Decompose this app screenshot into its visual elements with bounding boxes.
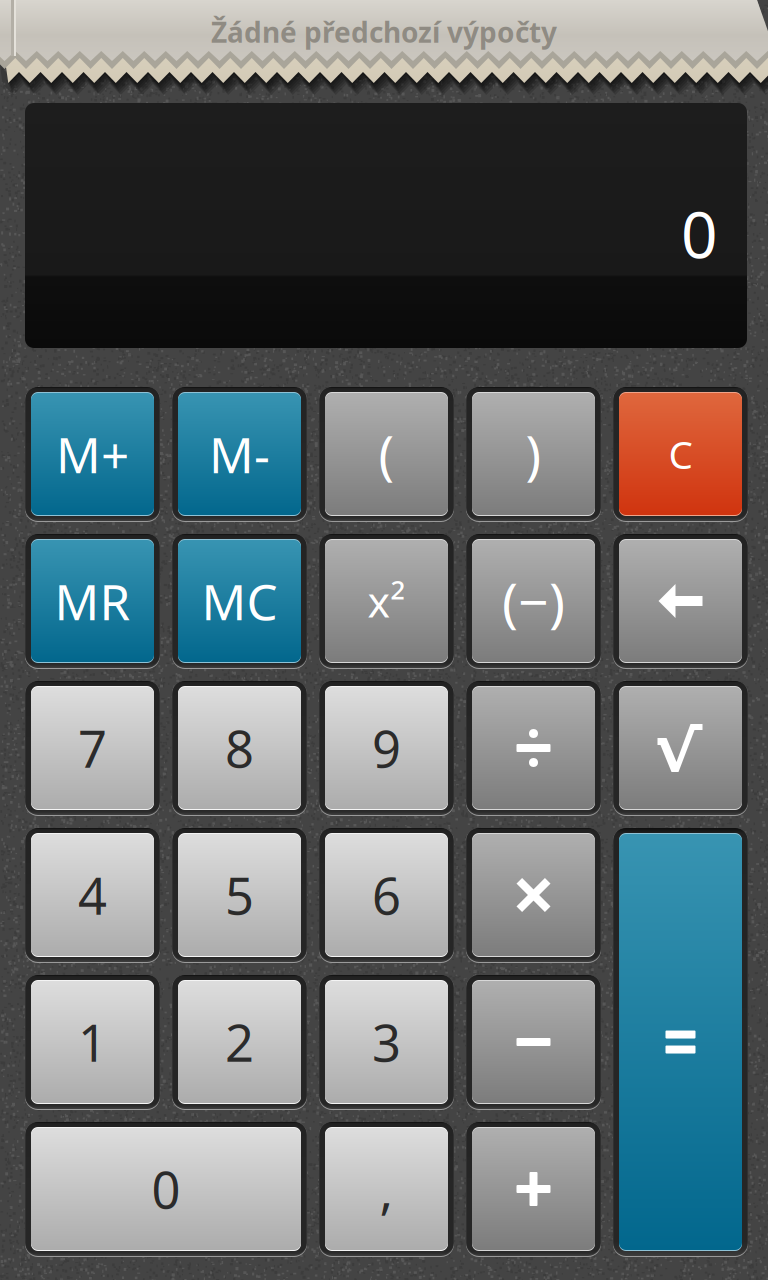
button[interactable] [466,975,601,1109]
button[interactable]: x² [319,534,454,668]
button[interactable]: 1 [25,975,160,1109]
button[interactable]: M+ [25,387,160,521]
staticText: ( [378,419,394,489]
staticText: 4 [78,861,107,929]
button[interactable] [613,534,748,668]
button[interactable]: 2 [172,975,307,1109]
staticText: M+ [56,421,129,487]
staticText: , [379,1155,393,1223]
staticText: C [668,428,692,480]
staticText: 9 [372,714,401,782]
staticText: (−) [502,566,565,636]
staticText: 7 [78,714,107,782]
staticText: 3 [372,1008,401,1076]
staticText: MR [54,568,130,634]
button[interactable]: 0 [25,1122,307,1256]
button[interactable]: 4 [25,828,160,962]
staticText: MC [201,568,277,634]
button[interactable]: 8 [172,681,307,815]
staticText: 8 [225,714,254,782]
button[interactable] [613,681,748,815]
staticText: 2 [225,1008,254,1076]
staticText: 6 [372,861,401,929]
button[interactable]: MC [172,534,307,668]
staticText: 0 [681,191,718,276]
staticText: ) [525,419,541,489]
staticText: Žádné předchozí výpočty [211,13,557,51]
staticText: 0 [151,1155,180,1223]
button[interactable]: 9 [319,681,454,815]
button[interactable] [466,681,601,815]
staticText: 5 [225,861,254,929]
button[interactable]: 7 [25,681,160,815]
button[interactable]: 6 [319,828,454,962]
button[interactable]: , [319,1122,454,1256]
button[interactable]: ) [466,387,601,521]
staticText: M- [209,421,270,487]
button[interactable]: M- [172,387,307,521]
button[interactable]: C [613,387,748,521]
button[interactable] [466,828,601,962]
button[interactable]: MR [25,534,160,668]
staticText: 1 [78,1008,107,1076]
staticText: x² [367,573,405,629]
button[interactable]: ( [319,387,454,521]
button[interactable]: 3 [319,975,454,1109]
button[interactable]: (−) [466,534,601,668]
button[interactable]: 5 [172,828,307,962]
button[interactable] [466,1122,601,1256]
button[interactable] [613,828,748,1256]
